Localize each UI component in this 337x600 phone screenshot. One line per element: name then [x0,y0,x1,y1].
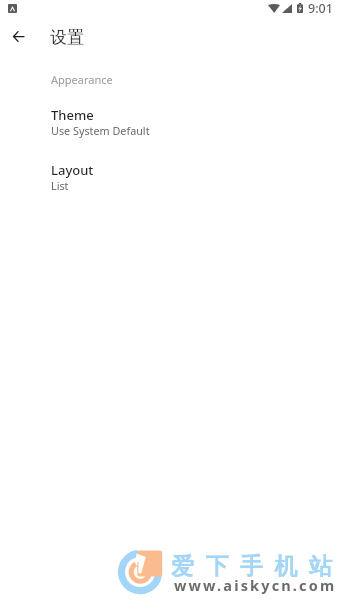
staticText: Appearance [51,72,113,87]
staticText: Layout [51,161,94,179]
button[interactable]: Theme [0,102,337,142]
button[interactable]: Layout [0,157,337,197]
staticText: 爱下手机站 [171,552,337,581]
staticText: www.aiskycn.com [174,575,337,595]
button[interactable]: Appearance [0,66,337,90]
staticText: 设置 [50,27,84,48]
staticText: Use System Default [51,123,150,138]
staticText: 9:01 [308,0,333,17]
button[interactable]: Back [4,22,32,50]
staticText: Theme [51,106,94,124]
staticText: List [51,178,69,193]
